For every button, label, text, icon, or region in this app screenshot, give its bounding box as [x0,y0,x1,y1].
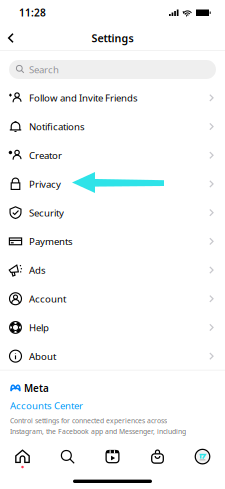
button[interactable]: Shop [135,444,180,470]
button[interactable]: Home [0,444,45,470]
staticText: Privacy [29,177,61,190]
staticText: 11:28 [19,6,46,19]
button[interactable]: Back [0,26,22,50]
staticText: Security [29,206,64,219]
staticText: Search [29,63,59,76]
button[interactable]: Help [0,313,225,342]
button[interactable]: Privacy [0,170,225,198]
button[interactable]: Account [0,284,225,313]
button[interactable]: Reels [90,444,135,470]
staticText: Settings [91,31,133,45]
staticText: Notifications [29,120,85,133]
button[interactable]: Search [0,51,225,83]
staticText: About [29,350,56,363]
button[interactable]: Ads [0,256,225,284]
button[interactable]: Notifications [0,112,225,141]
staticText: Ads [29,263,46,277]
staticText: Control settings for connected experienc… [10,416,167,425]
button[interactable]: Accounts Center [10,399,83,412]
button[interactable]: Search [45,444,90,470]
button[interactable]: Profile [180,444,225,470]
staticText: Help [29,321,49,334]
button[interactable]: Payments [0,227,225,256]
staticText: Meta [24,381,49,395]
staticText: Accounts Center [10,399,83,412]
button[interactable]: Follow and Invite Friends [0,83,225,112]
staticText: Creator [29,149,62,162]
staticText: Follow and Invite Friends [29,91,138,104]
button[interactable]: About [0,342,225,370]
button[interactable]: Security [0,198,225,227]
staticText: Payments [29,235,73,248]
staticText: Account [29,292,66,305]
button[interactable]: Creator [0,141,225,170]
staticText: Instagram, the Facebook app and Messenge… [10,427,186,436]
